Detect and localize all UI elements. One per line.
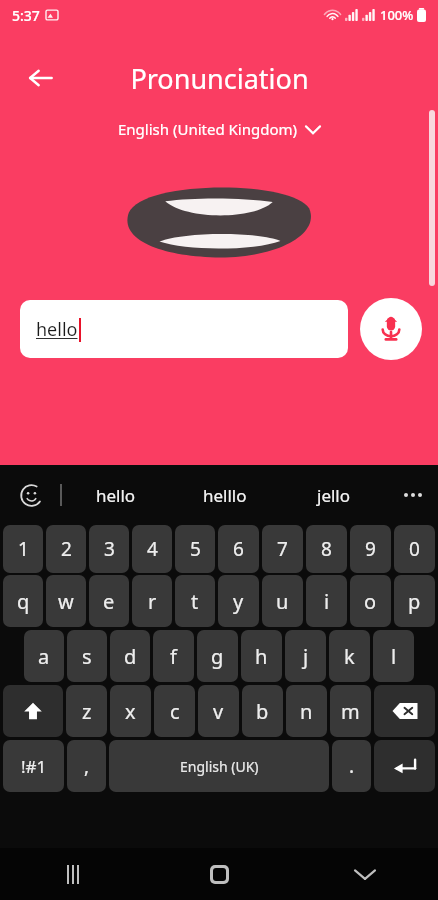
- button[interactable]: k: [329, 630, 370, 682]
- staticText: f: [170, 643, 177, 670]
- staticText: .: [349, 753, 355, 779]
- button[interactable]: 2: [46, 525, 86, 573]
- button[interactable]: 5: [175, 525, 215, 573]
- staticText: e: [103, 588, 115, 615]
- button[interactable]: e: [89, 575, 129, 627]
- button[interactable]: a: [24, 630, 64, 682]
- staticText: k: [344, 643, 355, 670]
- staticText: 5: [190, 536, 201, 562]
- button[interactable]: 1: [3, 525, 43, 573]
- staticText: t: [191, 588, 199, 615]
- staticText: m: [341, 698, 360, 725]
- button[interactable]: hello: [62, 465, 170, 525]
- staticText: 7: [277, 536, 288, 562]
- staticText: ,: [84, 753, 90, 779]
- staticText: h: [255, 643, 268, 670]
- button[interactable]: n: [286, 685, 327, 737]
- button[interactable]: English (UK): [109, 740, 329, 792]
- button[interactable]: hello: [20, 300, 348, 358]
- staticText: r: [148, 588, 157, 615]
- button[interactable]: Shift: [3, 685, 63, 737]
- button[interactable]: ,: [67, 740, 106, 792]
- button[interactable]: s: [67, 630, 107, 682]
- staticText: z: [82, 698, 92, 725]
- staticText: jello: [317, 484, 351, 507]
- staticText: 2: [61, 536, 72, 562]
- staticText: 0: [409, 536, 420, 562]
- staticText: c: [170, 698, 180, 725]
- button[interactable]: Back: [16, 54, 64, 102]
- staticText: 4: [147, 536, 158, 562]
- button[interactable]: 3: [89, 525, 129, 573]
- button[interactable]: Emoji: [14, 478, 48, 512]
- button[interactable]: !#1: [3, 740, 64, 792]
- button[interactable]: g: [197, 630, 238, 682]
- button[interactable]: j: [285, 630, 326, 682]
- button[interactable]: z: [66, 685, 107, 737]
- button[interactable]: helllo: [170, 465, 279, 525]
- staticText: j: [303, 643, 309, 670]
- button[interactable]: q: [3, 575, 43, 627]
- staticText: 8: [321, 536, 332, 562]
- button[interactable]: 8: [306, 525, 347, 573]
- button[interactable]: 0: [394, 525, 435, 573]
- button[interactable]: m: [330, 685, 371, 737]
- staticText: hello: [96, 484, 136, 507]
- staticText: 1: [18, 536, 29, 562]
- button[interactable]: v: [198, 685, 239, 737]
- staticText: English (UK): [180, 757, 259, 776]
- staticText: !#1: [21, 755, 47, 778]
- staticText: x: [125, 698, 136, 725]
- staticText: hello: [36, 317, 78, 342]
- button[interactable]: w: [46, 575, 86, 627]
- button[interactable]: Hide keyboard: [292, 848, 438, 900]
- button[interactable]: 6: [218, 525, 259, 573]
- button[interactable]: Backspace: [374, 685, 435, 737]
- staticText: d: [124, 643, 137, 670]
- button[interactable]: c: [154, 685, 195, 737]
- staticText: 9: [365, 536, 376, 562]
- button[interactable]: 4: [132, 525, 172, 573]
- staticText: v: [213, 698, 224, 725]
- staticText: b: [256, 698, 269, 725]
- button[interactable]: jello: [279, 465, 388, 525]
- staticText: Pronunciation: [130, 60, 309, 97]
- button[interactable]: h: [241, 630, 282, 682]
- staticText: i: [324, 588, 330, 615]
- staticText: g: [211, 643, 224, 670]
- staticText: 5:37: [12, 6, 40, 25]
- staticText: 100%: [380, 6, 414, 24]
- button[interactable]: 9: [350, 525, 391, 573]
- button[interactable]: b: [242, 685, 283, 737]
- button[interactable]: x: [110, 685, 151, 737]
- button[interactable]: p: [394, 575, 435, 627]
- button[interactable]: l: [373, 630, 414, 682]
- button[interactable]: o: [350, 575, 391, 627]
- staticText: p: [408, 588, 421, 615]
- button[interactable]: r: [132, 575, 172, 627]
- staticText: 3: [104, 536, 115, 562]
- staticText: a: [38, 643, 50, 670]
- button[interactable]: t: [175, 575, 215, 627]
- staticText: q: [17, 588, 30, 615]
- button[interactable]: English (United Kingdom): [112, 116, 326, 142]
- staticText: s: [82, 643, 92, 670]
- staticText: u: [276, 588, 289, 615]
- button[interactable]: y: [218, 575, 259, 627]
- button[interactable]: u: [262, 575, 303, 627]
- button[interactable]: f: [153, 630, 194, 682]
- button[interactable]: More suggestions: [388, 465, 438, 525]
- staticText: helllo: [203, 484, 247, 507]
- button[interactable]: Recent apps: [0, 848, 146, 900]
- button[interactable]: Home: [146, 848, 292, 900]
- button[interactable]: Voice input: [360, 298, 422, 360]
- button[interactable]: Enter: [374, 740, 435, 792]
- staticText: n: [300, 698, 313, 725]
- staticText: 6: [233, 536, 244, 562]
- button[interactable]: 7: [262, 525, 303, 573]
- button[interactable]: i: [306, 575, 347, 627]
- staticText: o: [364, 588, 377, 615]
- staticText: y: [233, 588, 244, 615]
- button[interactable]: .: [332, 740, 371, 792]
- button[interactable]: d: [110, 630, 150, 682]
